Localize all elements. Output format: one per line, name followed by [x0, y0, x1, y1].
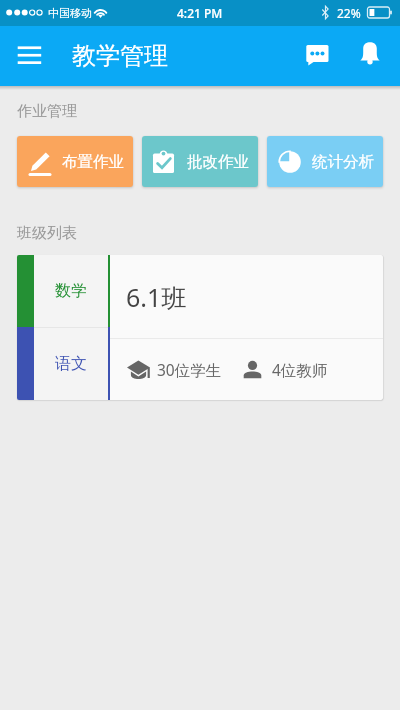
staticText: 统计分析: [312, 152, 374, 172]
staticText: 教学管理: [72, 41, 168, 71]
staticText: 4位教师: [272, 359, 328, 380]
staticText: 布置作业: [62, 152, 124, 172]
button[interactable]: 统计分析: [267, 136, 383, 187]
button[interactable]: 批改作业: [142, 136, 258, 187]
staticText: 22%: [337, 5, 361, 21]
staticText: 中国移动: [48, 6, 92, 20]
button[interactable]: 布置作业: [17, 136, 133, 187]
staticText: 30位学生: [157, 359, 222, 380]
button[interactable]: Messages: [301, 39, 335, 73]
button[interactable]: 数学: [17, 255, 383, 400]
staticText: 作业管理: [17, 102, 77, 121]
staticText: 批改作业: [187, 152, 249, 172]
staticText: 6.1班: [126, 280, 187, 314]
staticText: 语文: [55, 354, 87, 374]
button[interactable]: Menu: [10, 36, 50, 76]
staticText: 班级列表: [17, 224, 77, 243]
staticText: 4:21 PM: [177, 5, 223, 21]
staticText: 数学: [55, 281, 87, 301]
button[interactable]: Notifications: [353, 39, 387, 73]
